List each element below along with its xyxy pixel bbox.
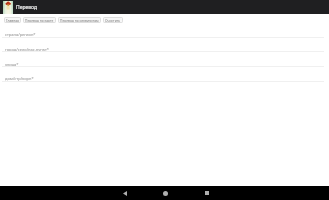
button[interactable]: Back — [105, 186, 145, 200]
staticText: Главная — [6, 18, 19, 22]
button[interactable]: Recent apps — [187, 186, 227, 200]
button[interactable]: Очистить — [103, 17, 123, 23]
staticText: Перевод по реквизитам — [60, 18, 99, 22]
button[interactable]: Главная — [4, 17, 21, 23]
button[interactable]: страна/регион* — [0, 30, 329, 39]
staticText: дом/стр/корп* — [5, 76, 34, 81]
button[interactable]: Перевод по карте — [23, 17, 56, 23]
button[interactable]: город/село/нас.пункт* — [0, 45, 329, 54]
staticText: улица* — [5, 62, 19, 67]
button[interactable]: Home — [145, 186, 185, 200]
staticText: город/село/нас.пункт* — [5, 47, 49, 52]
staticText: Перевод по карте — [25, 18, 54, 22]
button[interactable]: дом/стр/корп* — [0, 74, 329, 83]
button[interactable]: улица* — [0, 60, 329, 69]
staticText: Очистить — [105, 18, 121, 22]
staticText: Перевод — [16, 4, 37, 11]
button[interactable]: Перевод по реквизитам — [58, 17, 101, 23]
staticText: страна/регион* — [5, 32, 36, 37]
